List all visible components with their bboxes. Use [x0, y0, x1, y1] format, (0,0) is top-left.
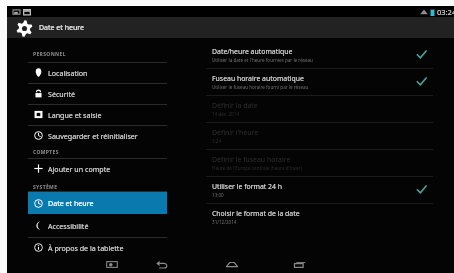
button[interactable]: Fuseau horaire automatique [206, 68, 433, 95]
button[interactable]: Accessibilité [28, 214, 167, 237]
staticText: Heure de l'Europe centrale (heure d'hive… [212, 165, 302, 171]
staticText: Date et heure [48, 198, 94, 208]
staticText: 03:24 [437, 7, 454, 17]
button[interactable]: Recent apps [291, 255, 309, 273]
other: Settings [16, 20, 33, 37]
button[interactable]: Langue et saisie [28, 104, 167, 125]
staticText: Sécurité [48, 89, 76, 99]
button[interactable]: Définir la date [206, 95, 433, 122]
staticText: 3:24 [212, 138, 222, 144]
button[interactable]: Settings [7, 17, 454, 38]
button[interactable]: Date/heure automatique [206, 41, 433, 68]
staticText: Ajouter un compte [48, 164, 111, 174]
staticText: Utiliser le fuseau horaire fourni par le… [212, 84, 309, 90]
button[interactable]: Screenshot [103, 255, 121, 273]
button[interactable]: Date et heure [28, 192, 167, 214]
button[interactable]: Définir l'heure [206, 122, 433, 149]
staticText: Langue et saisie [48, 110, 102, 120]
staticText: Date/heure automatique [212, 47, 293, 56]
staticText: 31/12/2014 [212, 219, 237, 225]
staticText: Définir la date [212, 101, 258, 110]
staticText: 13:00 [212, 192, 224, 198]
staticText: Utiliser le format 24 h [212, 182, 283, 191]
button[interactable]: À propos de la tablette [28, 237, 167, 258]
button[interactable]: Définir le fuseau horaire [206, 149, 433, 176]
staticText: Choisir le format de la date [212, 209, 300, 218]
staticText: Utiliser la date et l'heure fournies par… [212, 57, 313, 63]
button[interactable]: Localisation [28, 62, 167, 83]
staticText: Définir l'heure [212, 128, 259, 137]
staticText: Fuseau horaire automatique [212, 74, 304, 83]
button[interactable]: Back [153, 255, 171, 273]
staticText: SYSTÈME [33, 184, 58, 191]
staticText: 14 déc. 2014 [212, 111, 240, 117]
staticText: Date et heure [39, 23, 84, 33]
button[interactable]: Home [223, 255, 241, 273]
staticText: Définir le fuseau horaire [212, 155, 291, 164]
staticText: À propos de la tablette [48, 243, 124, 253]
button[interactable]: Ajouter un compte [28, 158, 167, 179]
button[interactable]: Sauvegarder et réinitialiser [28, 125, 167, 146]
button[interactable]: Utiliser le format 24 h [206, 176, 433, 203]
staticText: COMPTES [33, 149, 59, 156]
staticText: PERSONNEL [33, 51, 66, 58]
button[interactable]: Sécurité [28, 83, 167, 104]
staticText: Localisation [48, 68, 88, 78]
staticText: Sauvegarder et réinitialiser [48, 131, 138, 141]
button[interactable]: Choisir le format de la date [206, 203, 433, 230]
staticText: Accessibilité [48, 221, 89, 231]
